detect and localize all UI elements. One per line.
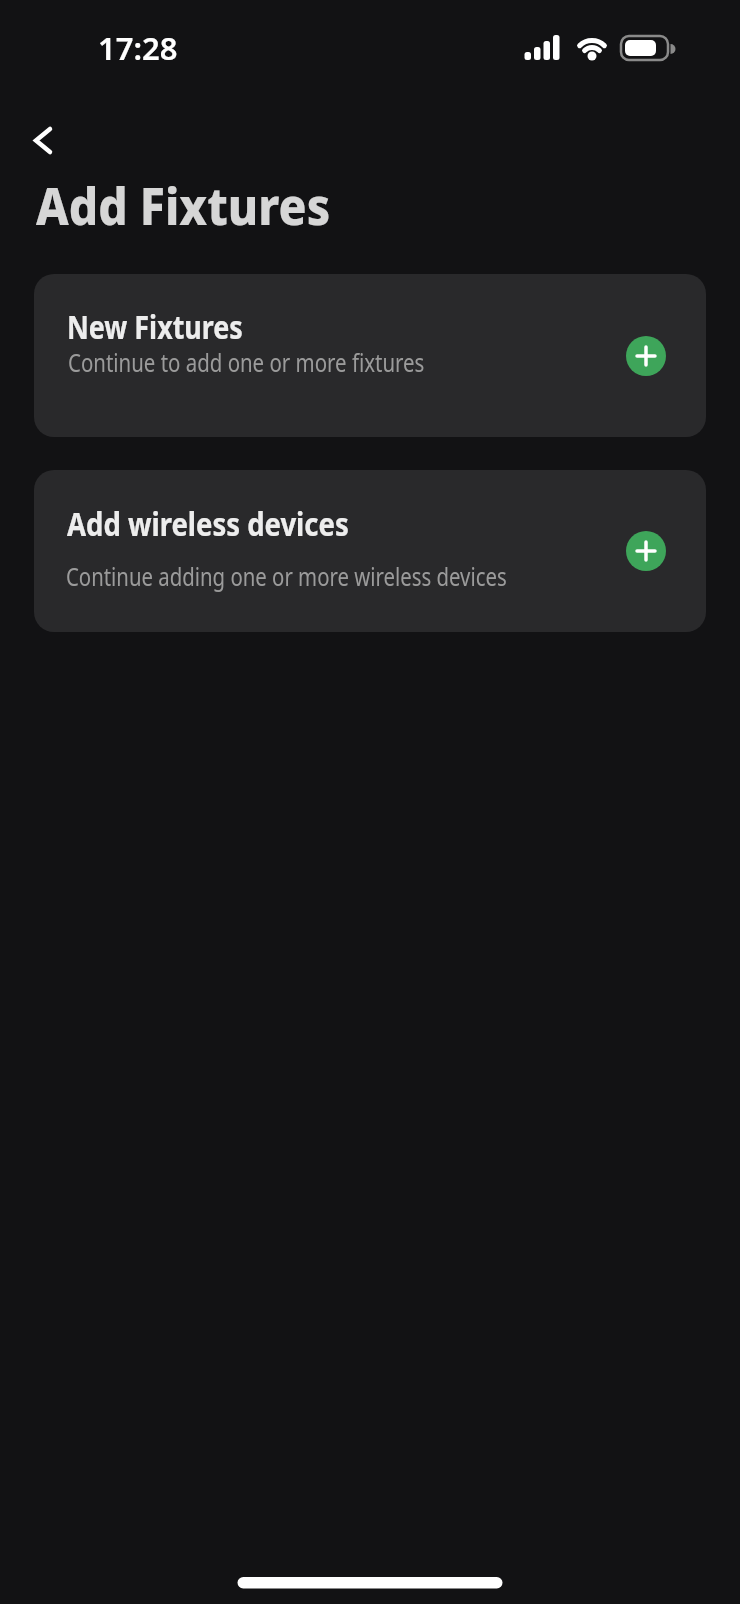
staticText: Continue to add one or more fixtures — [68, 344, 425, 379]
button[interactable] — [626, 336, 666, 376]
button[interactable]: Add wireless devices — [34, 470, 706, 632]
button[interactable]: New Fixtures — [34, 274, 706, 437]
staticText: Add Fixtures — [36, 169, 331, 240]
staticText: New Fixtures — [67, 305, 243, 349]
staticText: Continue adding one or more wireless dev… — [66, 558, 507, 593]
staticText: Add wireless devices — [67, 502, 349, 546]
button[interactable] — [26, 120, 66, 160]
staticText: 17:28 — [98, 27, 178, 69]
button[interactable] — [626, 531, 666, 571]
